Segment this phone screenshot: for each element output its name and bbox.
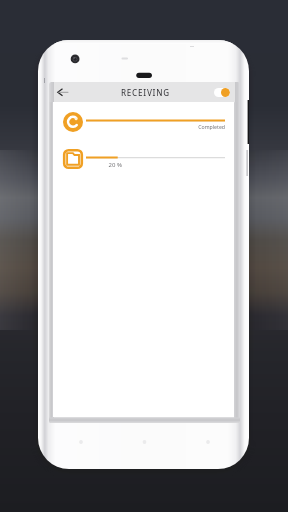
staticText: 20 % [86, 161, 122, 169]
button[interactable]: 20 % [53, 149, 234, 169]
staticText: Completed [86, 123, 225, 130]
button[interactable]: Toggle receiving [214, 88, 230, 97]
button[interactable]: Back [50, 82, 70, 102]
staticText: RECEIVING [121, 87, 170, 98]
button[interactable]: Completed [53, 112, 234, 132]
